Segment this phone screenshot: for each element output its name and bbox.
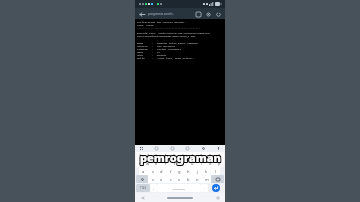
staticText: Motto	[137, 56, 145, 59]
button[interactable]: Space	[157, 184, 201, 192]
staticText: :	[152, 41, 157, 44]
staticText: pemrograman	[141, 151, 222, 166]
button[interactable]: ?123	[136, 184, 150, 192]
staticText: 4	[164, 153, 167, 158]
button[interactable]: programiz.com/c-programming/online-compi…	[148, 12, 193, 16]
button[interactable]: Keyboard tool 1	[139, 146, 144, 151]
button[interactable]: a	[139, 167, 148, 175]
button[interactable]: Period	[201, 184, 208, 192]
button[interactable]: d	[157, 167, 166, 175]
button[interactable]: 7	[188, 152, 197, 159]
staticText: bin/fileoutput/programz/main/main_1.pas	[137, 34, 196, 37]
button[interactable]: Recents	[215, 195, 220, 200]
button[interactable]: o	[206, 159, 215, 167]
staticText: Hobi	[137, 53, 144, 56]
staticText: pemrograman	[141, 150, 222, 165]
button[interactable]: i	[197, 159, 206, 167]
staticText: pemrograman	[139, 150, 220, 165]
button[interactable]: 8	[197, 152, 206, 159]
button[interactable]: x	[157, 175, 166, 183]
staticText: Renang	[157, 53, 167, 56]
button[interactable]: Backspace	[211, 175, 224, 183]
button[interactable]: Keyboard tool 2	[154, 146, 159, 151]
staticText: m	[205, 177, 209, 182]
staticText: q	[139, 161, 142, 166]
button[interactable]: w	[144, 159, 152, 167]
staticText: Sekolah	[137, 44, 148, 47]
button[interactable]: Home	[167, 197, 193, 199]
button[interactable]: u	[188, 159, 197, 167]
button[interactable]: Keyboard tool 5	[201, 146, 206, 151]
staticText: programiz.com/c-programming/online-compi…	[148, 12, 193, 16]
staticText: :	[152, 47, 157, 50]
button[interactable]: m	[202, 175, 211, 183]
staticText: b	[187, 177, 190, 182]
staticText: ----------------------------------------…	[137, 26, 201, 29]
button[interactable]: Back	[138, 10, 146, 18]
staticText: pemrograman	[139, 149, 220, 164]
button[interactable]: y	[179, 159, 188, 167]
staticText: Smk Nasional	[157, 44, 176, 47]
button[interactable]: Keyboard tool 3	[170, 146, 175, 151]
button[interactable]: j	[193, 167, 202, 175]
button[interactable]: b	[184, 175, 193, 183]
button[interactable]: f	[166, 167, 175, 175]
button[interactable]: v	[175, 175, 184, 183]
staticText: 3	[155, 153, 158, 158]
staticText: pemrograman	[141, 149, 222, 164]
button[interactable]: g	[175, 167, 184, 175]
button[interactable]: Keyboard tool 6	[216, 146, 221, 151]
button[interactable]: 1	[136, 152, 144, 159]
staticText: Size: 41x25	[137, 23, 154, 26]
button[interactable]: Back	[140, 195, 145, 200]
staticText: j	[197, 169, 199, 174]
staticText: Imanuel Putra Ricky Tamaran	[157, 41, 198, 44]
button[interactable]: z	[148, 175, 157, 183]
staticText: Program Studi	[137, 47, 152, 50]
button[interactable]: Keyboard tool 4	[185, 146, 190, 151]
staticText: execute file: /data/user/0/com.cxxdroid/…	[137, 31, 211, 34]
staticText: 18	[157, 50, 161, 53]
button[interactable]: k	[202, 167, 211, 175]
button[interactable]: Shift	[136, 175, 148, 183]
button[interactable]: p	[215, 159, 224, 167]
button[interactable]: 3	[152, 152, 161, 159]
button[interactable]: h	[184, 167, 193, 175]
button[interactable]: Reload	[214, 10, 222, 18]
button[interactable]: c	[166, 175, 175, 183]
staticText: h	[187, 169, 190, 174]
staticText: o	[209, 161, 212, 166]
staticText: pemrograman	[140, 150, 221, 165]
button[interactable]: 4	[161, 152, 170, 159]
staticText: i	[201, 161, 203, 166]
button[interactable]: 5	[170, 152, 179, 159]
button[interactable]: 6	[179, 152, 188, 159]
staticText: 9	[209, 153, 212, 158]
staticText: u	[191, 161, 194, 166]
button[interactable]: Settings	[204, 10, 212, 18]
button[interactable]: l	[211, 167, 220, 175]
button[interactable]: 2	[144, 152, 152, 159]
staticText: :	[152, 56, 157, 59]
staticText: x	[160, 177, 163, 182]
staticText: ,	[153, 186, 154, 190]
staticText: f	[170, 169, 172, 174]
staticText: 0	[218, 153, 221, 158]
button[interactable]: Enter	[212, 184, 220, 192]
button[interactable]: 0	[215, 152, 224, 159]
button[interactable]: q	[136, 159, 144, 167]
button[interactable]: e	[152, 159, 161, 167]
staticText: d	[160, 169, 163, 174]
staticText: pemrograman	[139, 151, 220, 166]
button[interactable]: r	[161, 159, 170, 167]
staticText: :	[152, 44, 157, 47]
staticText: Umur	[137, 50, 144, 53]
button[interactable]: s	[148, 167, 157, 175]
staticText: p	[218, 161, 221, 166]
button[interactable]: 9	[206, 152, 215, 159]
button[interactable]: n	[193, 175, 202, 183]
button[interactable]: Tabs	[194, 10, 202, 18]
button[interactable]: Comma	[150, 184, 157, 192]
staticText: r	[165, 161, 167, 166]
button[interactable]: t	[170, 159, 179, 167]
